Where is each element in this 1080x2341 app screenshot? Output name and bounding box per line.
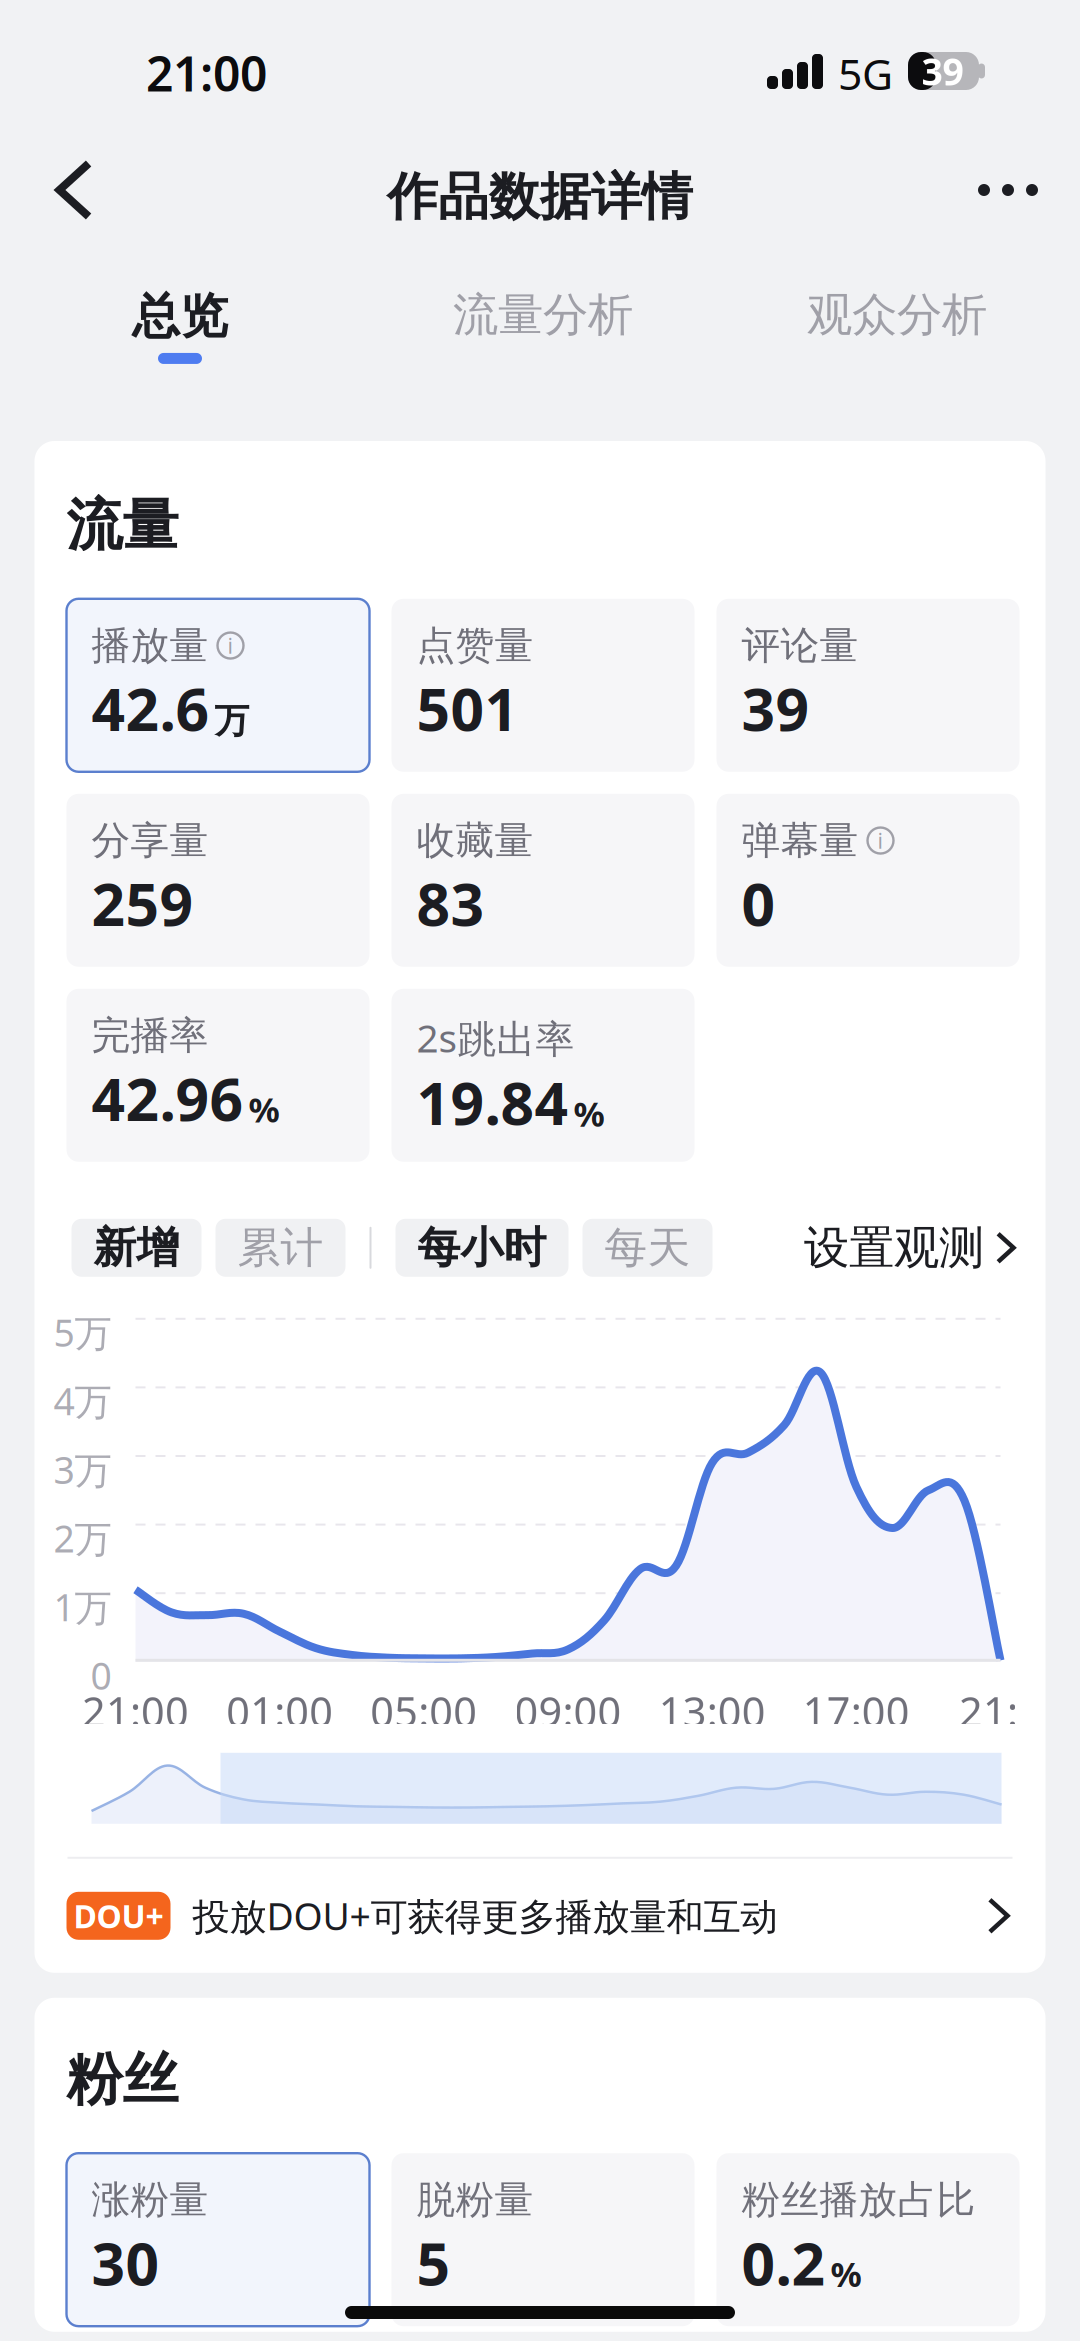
staticText: 每小时 xyxy=(417,1222,546,1274)
staticText: 01:00 xyxy=(226,1684,333,1739)
staticText: i xyxy=(877,826,883,855)
staticText: 5G xyxy=(838,45,893,102)
staticText: 42.96 xyxy=(91,1059,243,1137)
button[interactable]: 累计 xyxy=(215,1219,345,1277)
staticText: 万 xyxy=(214,700,249,742)
staticText: 21:00 xyxy=(146,41,267,105)
staticText: 脱粉量 xyxy=(416,2176,533,2224)
staticText: 投放DOU+可获得更多播放量和互动 xyxy=(192,1891,777,1941)
staticText: 设置观测 xyxy=(804,1220,984,1276)
staticText: 0.2 xyxy=(741,2224,825,2302)
button[interactable]: 播放量 xyxy=(66,599,369,772)
button[interactable]: Back xyxy=(26,130,122,250)
button[interactable]: 观众分析 xyxy=(727,250,1067,441)
staticText: 粉丝 xyxy=(66,2045,178,2114)
staticText: 83 xyxy=(416,864,484,942)
button[interactable]: 收藏量 xyxy=(391,794,694,967)
button[interactable]: 总览 xyxy=(10,250,350,441)
staticText: 累计 xyxy=(237,1222,323,1274)
button[interactable]: 点赞量 xyxy=(391,599,694,772)
staticText: 2万 xyxy=(53,1513,111,1563)
staticText: 点赞量 xyxy=(416,622,533,669)
staticText: 分享量 xyxy=(91,817,208,864)
staticText: 0 xyxy=(90,1650,111,1700)
staticText: 4万 xyxy=(53,1376,111,1426)
button[interactable]: 脱粉量 xyxy=(391,2153,694,2326)
staticText: 总览 xyxy=(132,287,228,346)
staticText: 5万 xyxy=(53,1307,111,1357)
staticText: 30 xyxy=(91,2224,159,2302)
staticText: % xyxy=(573,1090,604,1136)
staticText: 新增 xyxy=(93,1222,179,1274)
staticText: 收藏量 xyxy=(416,817,533,864)
button[interactable]: 弹幕量 xyxy=(716,794,1019,967)
button[interactable]: 每小时 xyxy=(395,1219,568,1277)
staticText: 13:00 xyxy=(659,1684,766,1739)
staticText: % xyxy=(830,2250,861,2296)
button[interactable]: 完播率 xyxy=(66,989,369,1162)
staticText: 作品数据详情 xyxy=(387,166,693,228)
staticText: 39 xyxy=(921,46,963,96)
button[interactable]: 粉丝播放占比 xyxy=(716,2153,1019,2326)
button[interactable]: 新增 xyxy=(71,1219,201,1277)
staticText: 5 xyxy=(416,2224,450,2302)
button[interactable]: 设置观测 xyxy=(804,1220,1013,1276)
staticText: 501 xyxy=(416,669,518,747)
staticText: 弹幕量 xyxy=(741,817,858,864)
staticText: 1万 xyxy=(53,1582,111,1631)
staticText: 19.84 xyxy=(416,1063,568,1141)
button[interactable]: 分享量 xyxy=(66,794,369,967)
button[interactable]: 涨粉量 xyxy=(66,2153,369,2326)
staticText: 21:0 xyxy=(959,1684,1042,1739)
staticText: 05:00 xyxy=(370,1684,477,1739)
staticText: 3万 xyxy=(53,1445,111,1494)
staticText: 17:00 xyxy=(803,1684,910,1739)
staticText: 粉丝播放占比 xyxy=(741,2176,975,2224)
staticText: 09:00 xyxy=(514,1684,621,1739)
staticText: 259 xyxy=(91,864,193,942)
button[interactable]: 评论量 xyxy=(716,599,1019,772)
staticText: 2s跳出率 xyxy=(416,1012,574,1063)
button[interactable]: 流量分析 xyxy=(373,250,713,441)
button[interactable]: DOU+ xyxy=(34,1859,1045,1973)
staticText: 观众分析 xyxy=(807,287,987,343)
staticText: 评论量 xyxy=(741,622,858,669)
staticText: 流量分析 xyxy=(453,287,633,343)
staticText: 42.6 xyxy=(91,669,209,747)
staticText: 涨粉量 xyxy=(91,2176,208,2224)
staticText: 完播率 xyxy=(91,1012,208,1059)
staticText: 流量 xyxy=(66,491,178,560)
staticText: % xyxy=(248,1086,279,1132)
button[interactable]: 每天 xyxy=(582,1219,712,1277)
button[interactable]: More options xyxy=(960,130,1056,250)
staticText: 播放量 xyxy=(91,622,208,669)
staticText: 21:00 xyxy=(82,1684,189,1739)
button[interactable]: 2s跳出率 xyxy=(391,989,694,1162)
staticText: DOU+ xyxy=(73,1894,163,1937)
staticText: 0 xyxy=(741,864,775,942)
staticText: 每天 xyxy=(604,1222,690,1274)
staticText: i xyxy=(227,631,233,660)
staticText: 39 xyxy=(741,669,809,747)
